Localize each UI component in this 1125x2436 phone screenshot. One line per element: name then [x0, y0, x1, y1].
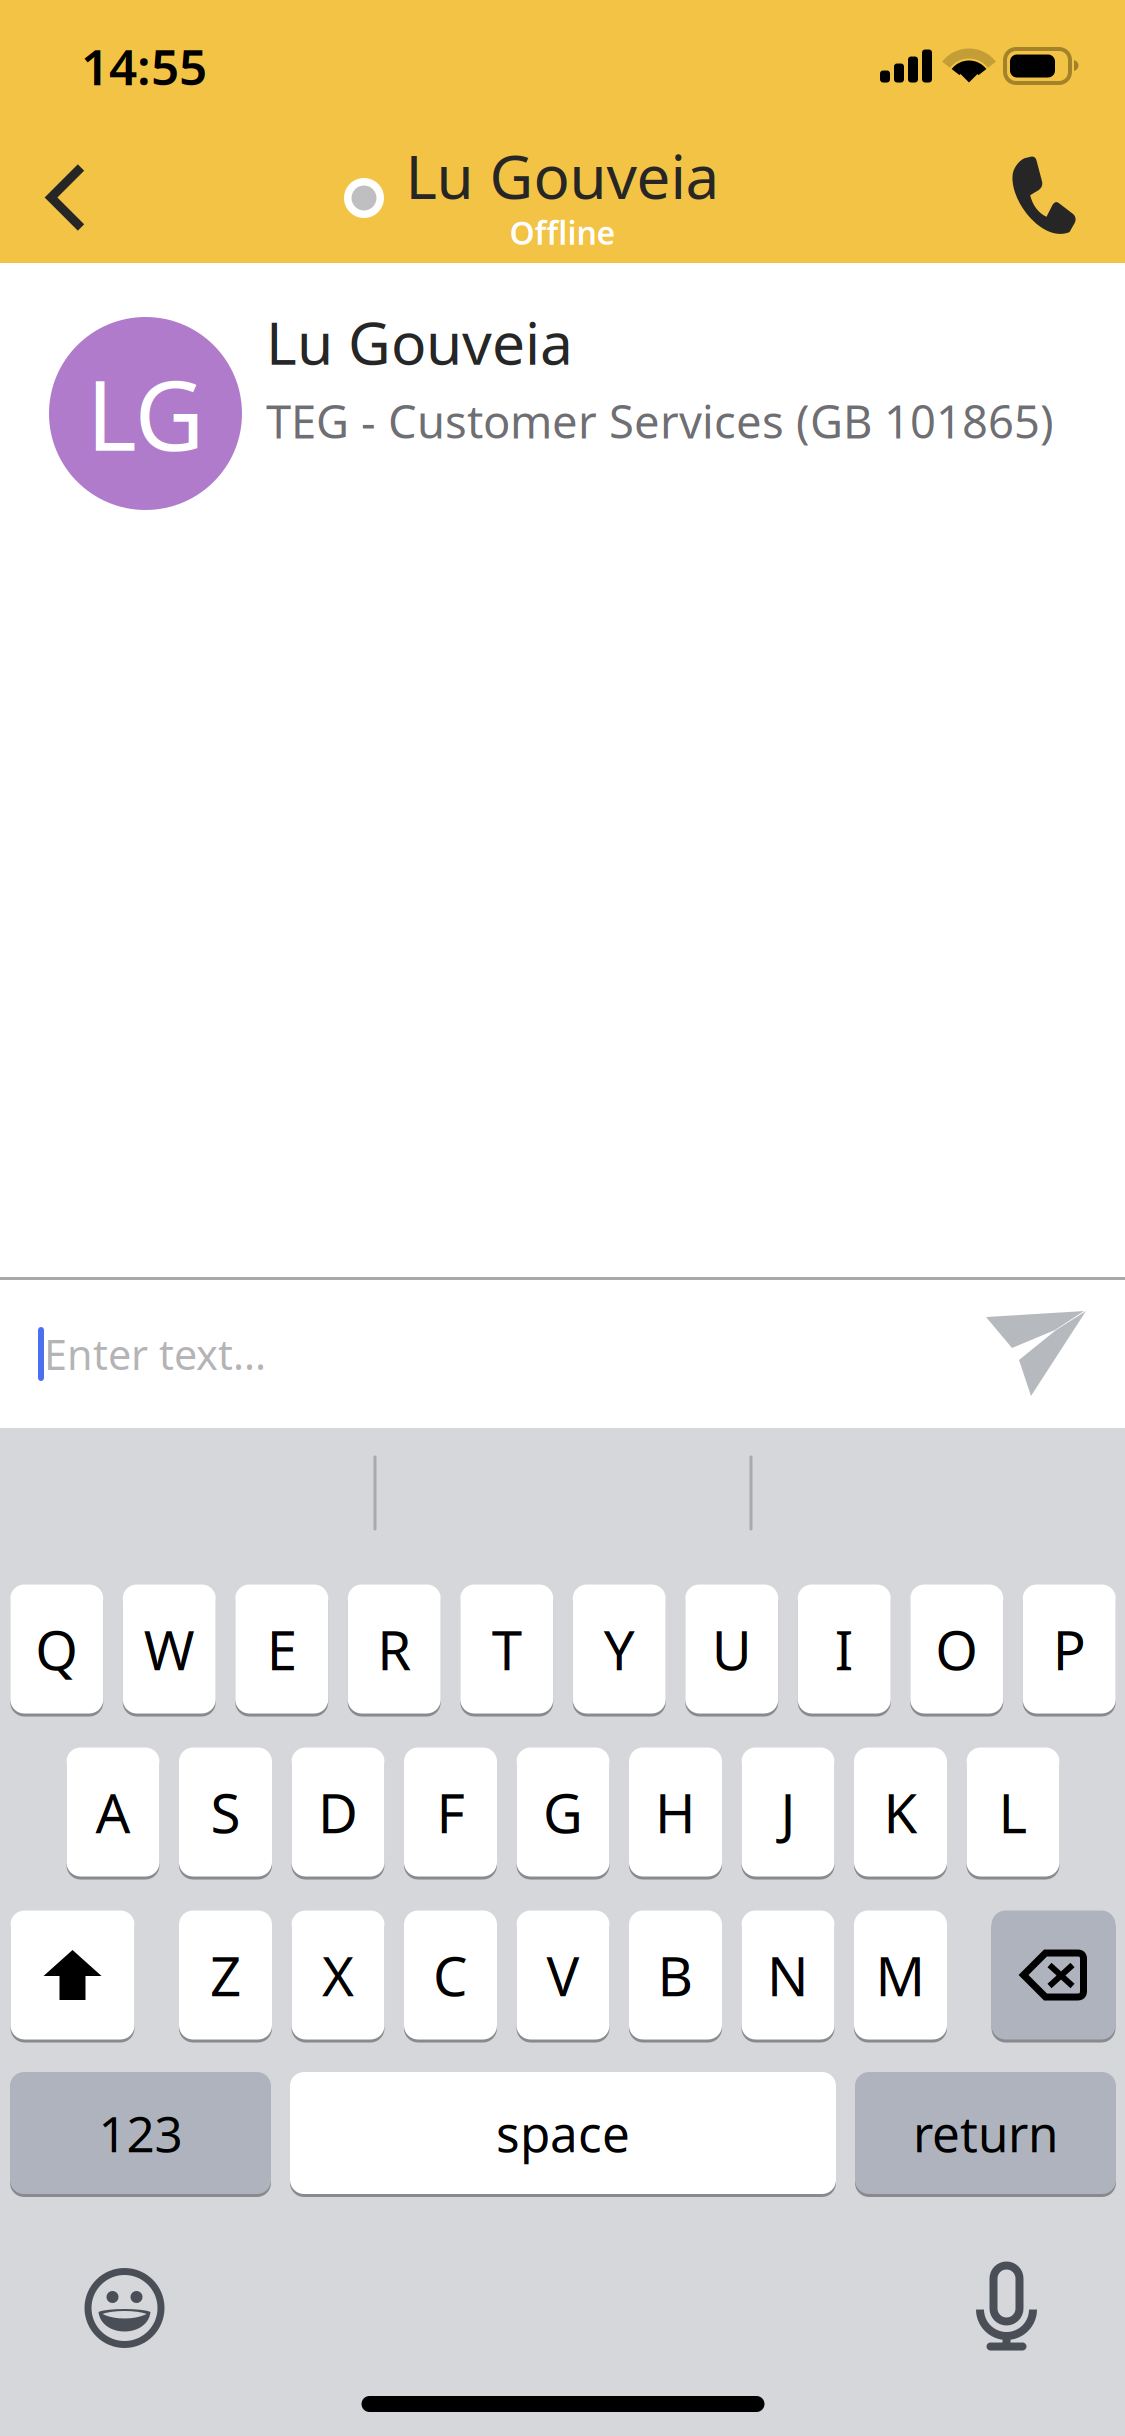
staticText: Lu Gouveia [405, 136, 719, 216]
staticText: TEG - Customer Services (GB 101865) [266, 391, 1054, 451]
staticText: 123 [98, 2100, 182, 2166]
button[interactable]: N [741, 1910, 834, 2042]
staticText: L [998, 1776, 1027, 1848]
button[interactable]: Call [984, 131, 1104, 262]
staticText: LG [86, 350, 204, 477]
staticText: S [210, 1776, 240, 1848]
staticText: R [377, 1613, 411, 1685]
button[interactable]: J [741, 1747, 834, 1879]
button[interactable]: 123 [10, 2072, 271, 2197]
staticText: E [267, 1613, 297, 1685]
button[interactable]: E [235, 1584, 328, 1716]
staticText: space [496, 2100, 630, 2166]
button[interactable]: Q [10, 1584, 103, 1716]
button[interactable]: T [460, 1584, 553, 1716]
staticText: J [780, 1776, 795, 1848]
staticText: Y [604, 1613, 635, 1685]
staticText: Lu Gouveia [266, 303, 573, 381]
staticText: U [712, 1613, 752, 1685]
staticText: W [144, 1613, 195, 1685]
button[interactable]: H [629, 1747, 722, 1879]
staticText: Offline [509, 211, 615, 253]
button[interactable]: G [516, 1747, 609, 1879]
button[interactable]: C [404, 1910, 497, 2042]
staticText: return [913, 2100, 1058, 2166]
staticText: Enter text... [44, 1327, 266, 1381]
staticText: F [436, 1776, 464, 1848]
button[interactable]: space [290, 2072, 836, 2197]
staticText: P [1053, 1613, 1086, 1685]
staticText: T [492, 1613, 522, 1685]
staticText: 14:55 [81, 33, 207, 99]
button[interactable]: Back [10, 132, 122, 263]
staticText: H [655, 1776, 696, 1848]
button[interactable]: Dictate [979, 2265, 1039, 2350]
button[interactable]: Send [966, 1311, 1125, 1397]
button[interactable]: F [404, 1747, 497, 1879]
button[interactable]: Shift [10, 1910, 134, 2042]
staticText: C [433, 1939, 468, 2011]
button[interactable]: V [516, 1910, 609, 2042]
button[interactable]: D [291, 1747, 384, 1879]
button[interactable]: L [966, 1747, 1059, 1879]
staticText: K [883, 1776, 917, 1848]
button[interactable]: P [1023, 1584, 1116, 1716]
button[interactable]: return [855, 2072, 1116, 2197]
button[interactable]: K [854, 1747, 947, 1879]
staticText: O [935, 1613, 978, 1685]
staticText: G [543, 1776, 583, 1848]
button[interactable]: I [798, 1584, 891, 1716]
staticText: Q [35, 1613, 78, 1685]
staticText: B [657, 1939, 693, 2011]
staticText: I [835, 1613, 854, 1685]
staticText: Z [210, 1939, 241, 2011]
button[interactable]: S [179, 1747, 272, 1879]
button[interactable]: B [629, 1910, 722, 2042]
staticText: N [767, 1939, 809, 2011]
button[interactable]: Z [179, 1910, 272, 2042]
button[interactable]: A [66, 1747, 159, 1879]
button[interactable]: W [123, 1584, 216, 1716]
button[interactable]: U [685, 1584, 778, 1716]
staticText: M [875, 1939, 925, 2011]
staticText: D [318, 1776, 358, 1848]
button[interactable]: Emoji [84, 2268, 164, 2348]
staticText: V [546, 1939, 579, 2011]
button[interactable]: R [348, 1584, 441, 1716]
button[interactable]: Delete [991, 1910, 1115, 2042]
staticText: A [95, 1776, 130, 1848]
button[interactable]: M [854, 1910, 947, 2042]
staticText: X [322, 1939, 354, 2011]
button[interactable]: X [291, 1910, 384, 2042]
button[interactable]: O [910, 1584, 1003, 1716]
button[interactable]: Y [573, 1584, 666, 1716]
